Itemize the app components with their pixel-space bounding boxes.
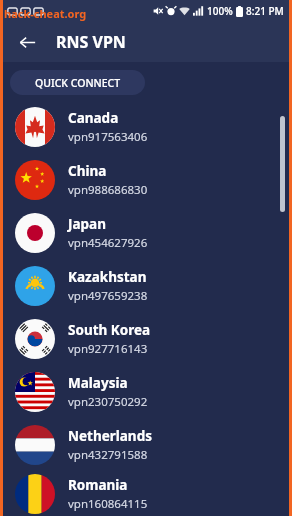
staticText: vpn988686830 xyxy=(68,182,148,198)
button[interactable]: South Korea xyxy=(3,312,289,365)
button[interactable]: QUICK CONNECT xyxy=(10,70,145,95)
staticText: Romania xyxy=(68,476,128,494)
button[interactable]: Back xyxy=(13,28,41,56)
staticText: vpn927716143 xyxy=(68,341,148,357)
staticText: vpn230750292 xyxy=(68,394,148,410)
staticText: 100% xyxy=(207,4,233,18)
staticText: RNS VPN xyxy=(56,31,126,53)
button[interactable]: Romania xyxy=(3,471,289,516)
staticText: hack-cheat.org xyxy=(4,6,87,21)
staticText: vpn917563406 xyxy=(68,129,148,145)
staticText: Malaysia xyxy=(68,374,128,392)
staticText: 8:21 PM xyxy=(246,4,284,18)
button[interactable]: Canada xyxy=(3,100,289,153)
button[interactable]: Netherlands xyxy=(3,418,289,471)
button[interactable]: Malaysia xyxy=(3,365,289,418)
staticText: vpn454627926 xyxy=(68,235,148,251)
staticText: Kazakhstan xyxy=(68,268,147,286)
staticText: Japan xyxy=(68,215,106,233)
staticText: vpn497659238 xyxy=(68,288,148,304)
staticText: vpn432791588 xyxy=(68,447,148,463)
button[interactable]: Japan xyxy=(3,206,289,259)
staticText: Canada xyxy=(68,109,119,127)
staticText: Netherlands xyxy=(68,427,152,445)
staticText: China xyxy=(68,162,107,180)
button[interactable]: Kazakhstan xyxy=(3,259,289,312)
button[interactable]: China xyxy=(3,153,289,206)
staticText: QUICK CONNECT xyxy=(35,76,121,90)
staticText: South Korea xyxy=(68,321,151,339)
staticText: vpn160864115 xyxy=(68,496,148,512)
